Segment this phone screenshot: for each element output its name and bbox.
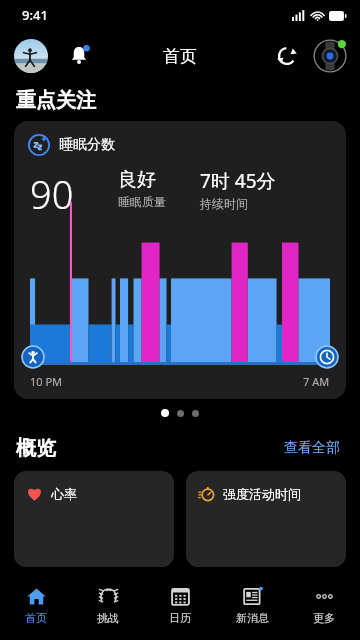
staticText: 7时 45分 <box>200 168 276 194</box>
staticText: 90 <box>30 168 74 220</box>
staticText: 挑战 <box>97 611 119 625</box>
staticText: 首页 <box>25 611 47 625</box>
button[interactable]: Notifications <box>62 39 96 73</box>
button[interactable]: 挑战 <box>72 578 144 640</box>
button[interactable]: 强度活动时间 <box>186 471 346 567</box>
staticText: 强度活动时间 <box>223 486 301 502</box>
staticText: 持续时间 <box>200 196 248 211</box>
button[interactable]: 首页 <box>0 578 72 640</box>
button[interactable]: 日历 <box>144 578 216 640</box>
staticText: 更多 <box>313 611 335 625</box>
staticText: 良好 <box>118 168 156 192</box>
staticText: 睡眠质量 <box>118 194 166 209</box>
staticText: 睡眠分数 <box>59 136 115 154</box>
button[interactable]: Sync <box>270 39 304 73</box>
button[interactable]: 新消息 <box>216 578 288 640</box>
button[interactable]: Watch device <box>312 38 348 74</box>
staticText: 心率 <box>51 486 77 502</box>
staticText: 7 AM <box>303 374 330 389</box>
staticText: 重点关注 <box>16 88 96 113</box>
button[interactable]: 查看全部 <box>280 435 344 461</box>
staticText: 新消息 <box>236 611 269 625</box>
staticText: 首页 <box>163 46 197 67</box>
button[interactable]: 更多 <box>288 578 360 640</box>
staticText: 查看全部 <box>284 439 340 457</box>
button[interactable]: Profile <box>14 39 48 73</box>
button[interactable]: 心率 <box>14 471 174 567</box>
staticText: 日历 <box>169 611 191 625</box>
staticText: 10 PM <box>30 374 63 389</box>
staticText: 9:41 <box>22 6 48 24</box>
staticText: 概览 <box>16 436 56 461</box>
button[interactable]: 睡眠分数 <box>14 121 346 399</box>
